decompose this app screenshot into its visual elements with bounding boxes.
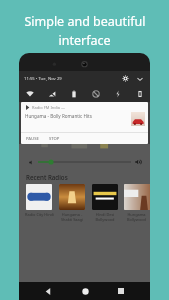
staticText: Radio FM India —	[32, 105, 66, 110]
staticText: Hungama - Bolly Romantic Hits	[25, 113, 92, 119]
button[interactable]: Hindi Desi Bollywood	[90, 184, 120, 222]
button[interactable]: Expand	[134, 73, 145, 84]
staticText: Recent Radios	[26, 173, 68, 181]
button[interactable]: Flashlight	[111, 87, 124, 100]
button[interactable]: Radio FM India —	[21, 102, 148, 144]
button[interactable]: Hungama - Shakti Saagi	[57, 184, 87, 222]
staticText: Hungama Bollywood Hits	[123, 212, 150, 222]
staticText: 11:55 • Tue, Nov 29	[24, 76, 62, 82]
button[interactable]: STOP	[48, 134, 61, 144]
button[interactable]: Battery	[67, 87, 80, 100]
staticText: STOP	[49, 136, 60, 142]
button[interactable]: Volume up	[133, 157, 143, 167]
staticText: Hindi Desi Bollywood	[90, 212, 120, 222]
button[interactable]: Hungama Bollywood Hits	[123, 184, 150, 222]
button[interactable]: Settings	[120, 73, 131, 84]
button[interactable]: Volume slider	[38, 157, 131, 167]
button[interactable]: Rotation	[133, 87, 146, 100]
staticText: interface	[58, 32, 111, 49]
button[interactable]: Mobile data	[45, 87, 58, 100]
button[interactable]: Do not disturb	[89, 87, 102, 100]
button[interactable]: Volume down	[26, 157, 36, 167]
button[interactable]: Wi-Fi	[23, 87, 36, 100]
staticText: Simple and beautiful	[24, 13, 146, 30]
button[interactable]: Home	[77, 283, 93, 299]
button[interactable]: Radio City Hindi	[24, 184, 54, 217]
staticText: PAUSE	[26, 136, 39, 142]
button[interactable]: PAUSE	[25, 134, 40, 144]
button[interactable]: Back	[40, 283, 56, 299]
staticText: Hungama - Shakti Saagi	[57, 212, 87, 222]
button[interactable]: Recents	[113, 283, 129, 299]
staticText: Radio City Hindi	[25, 212, 54, 217]
